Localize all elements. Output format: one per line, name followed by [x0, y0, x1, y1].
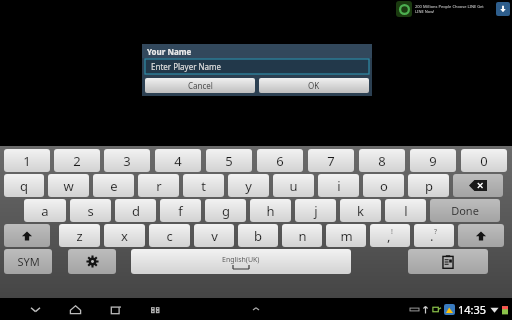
staticText: y: [245, 177, 252, 195]
button[interactable]: b: [238, 224, 278, 247]
button[interactable]: 8: [359, 149, 405, 172]
staticText: h: [266, 202, 275, 220]
button[interactable]: 6: [257, 149, 303, 172]
button[interactable]: Back: [26, 300, 44, 318]
button[interactable]: c: [149, 224, 190, 247]
button[interactable]: k: [340, 199, 381, 222]
button[interactable]: 5: [206, 149, 252, 172]
button[interactable]: Backspace: [453, 174, 503, 197]
staticText: w: [63, 177, 74, 195]
staticText: a: [41, 202, 49, 220]
staticText: 2: [73, 152, 81, 170]
button[interactable]: v: [194, 224, 234, 247]
button[interactable]: Done: [430, 199, 500, 222]
button[interactable]: d: [115, 199, 156, 222]
staticText: k: [357, 202, 364, 220]
button[interactable]: 3: [104, 149, 150, 172]
button[interactable]: n: [282, 224, 322, 247]
staticText: Done: [451, 203, 479, 218]
staticText: n: [298, 227, 307, 245]
button[interactable]: y: [228, 174, 269, 197]
staticText: l: [404, 202, 408, 220]
staticText: c: [166, 227, 173, 245]
button[interactable]: OK: [259, 78, 369, 93]
staticText: 8: [378, 152, 386, 170]
staticText: m: [340, 227, 353, 245]
staticText: 6: [276, 152, 284, 170]
button[interactable]: Home: [66, 300, 84, 318]
staticText: SYM: [17, 254, 40, 269]
staticText: b: [254, 227, 262, 245]
button[interactable]: j: [295, 199, 336, 222]
button[interactable]: 0: [461, 149, 507, 172]
staticText: 200 Millions People Choose LINE Get: [415, 4, 484, 9]
button[interactable]: u: [273, 174, 314, 197]
button[interactable]: r: [138, 174, 179, 197]
staticText: 4: [174, 152, 182, 170]
button[interactable]: z: [59, 224, 100, 247]
button[interactable]: 7: [308, 149, 354, 172]
staticText: ?: [434, 227, 438, 237]
button[interactable]: 2: [54, 149, 100, 172]
button[interactable]: w: [48, 174, 89, 197]
button[interactable]: Shift: [458, 224, 504, 247]
button[interactable]: e: [93, 174, 134, 197]
button[interactable]: Space: [131, 249, 351, 274]
staticText: f: [178, 202, 183, 220]
button[interactable]: SYM: [4, 249, 52, 274]
button[interactable]: Download: [496, 2, 510, 16]
staticText: ,: [387, 227, 391, 245]
staticText: j: [314, 202, 318, 220]
button[interactable]: i: [318, 174, 359, 197]
staticText: 14:35: [458, 302, 487, 317]
button[interactable]: q: [4, 174, 44, 197]
staticText: s: [87, 202, 94, 220]
button[interactable]: LINE app icon: [396, 1, 412, 17]
staticText: 3: [123, 152, 131, 170]
button[interactable]: Shift: [4, 224, 50, 247]
staticText: p: [425, 177, 433, 195]
staticText: t: [201, 177, 206, 195]
button[interactable]: Input settings: [68, 249, 116, 274]
button[interactable]: 4: [155, 149, 201, 172]
staticText: o: [380, 177, 388, 195]
staticText: i: [337, 177, 341, 195]
staticText: 0: [480, 152, 488, 170]
staticText: 1: [23, 152, 31, 170]
staticText: English(UK): [222, 255, 260, 265]
staticText: Enter Player Name: [151, 61, 222, 72]
staticText: 7: [327, 152, 335, 170]
staticText: OK: [308, 80, 320, 91]
button[interactable]: m: [326, 224, 366, 247]
staticText: z: [76, 227, 83, 245]
staticText: .: [430, 227, 434, 245]
button[interactable]: Screenshot: [146, 300, 164, 318]
button[interactable]: s: [70, 199, 111, 222]
button[interactable]: x: [104, 224, 145, 247]
staticText: q: [20, 177, 28, 195]
button[interactable]: h: [250, 199, 291, 222]
button[interactable]: t: [183, 174, 224, 197]
button[interactable]: Comma: [370, 224, 410, 247]
staticText: d: [132, 202, 140, 220]
staticText: Cancel: [188, 80, 213, 91]
staticText: e: [110, 177, 118, 195]
button[interactable]: o: [363, 174, 404, 197]
staticText: x: [121, 227, 128, 245]
button[interactable]: a: [24, 199, 66, 222]
button[interactable]: 1: [4, 149, 50, 172]
button[interactable]: Recent apps: [106, 300, 124, 318]
button[interactable]: 9: [410, 149, 456, 172]
staticText: Your Name: [147, 46, 192, 57]
button[interactable]: Enter Player Name: [145, 59, 369, 74]
staticText: u: [289, 177, 298, 195]
button[interactable]: p: [408, 174, 449, 197]
button[interactable]: Period: [414, 224, 454, 247]
staticText: LINE Now!: [415, 9, 435, 14]
button[interactable]: Clipboard: [408, 249, 488, 274]
button[interactable]: l: [385, 199, 426, 222]
button[interactable]: f: [160, 199, 201, 222]
button[interactable]: g: [205, 199, 246, 222]
button[interactable]: Cancel: [145, 78, 255, 93]
staticText: g: [222, 202, 230, 220]
